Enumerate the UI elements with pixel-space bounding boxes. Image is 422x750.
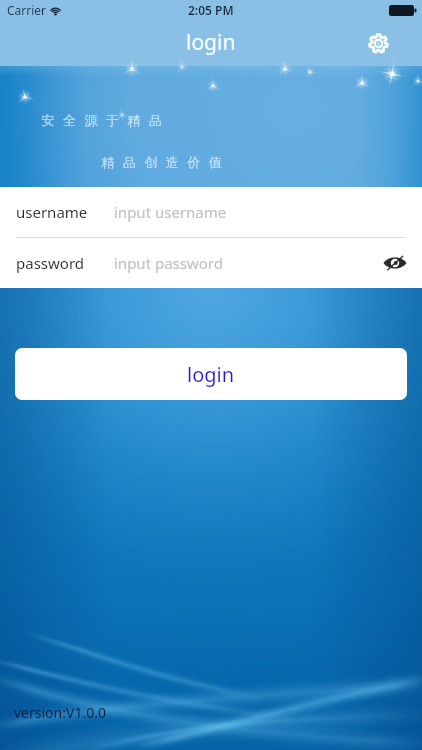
staticText: login xyxy=(186,28,236,57)
staticText: 2:05 PM xyxy=(188,2,234,18)
staticText: Carrier xyxy=(7,2,47,18)
staticText: version:V1.0.0 xyxy=(14,703,106,722)
button[interactable]: Settings xyxy=(360,25,396,61)
button[interactable]: login xyxy=(15,348,407,400)
staticText: input password xyxy=(114,253,223,273)
staticText: 安全源于精品 xyxy=(37,112,166,128)
button[interactable]: username xyxy=(0,187,422,237)
button[interactable]: password xyxy=(0,238,422,288)
staticText: username xyxy=(16,202,114,222)
staticText: 精品创造价值 xyxy=(97,154,226,170)
staticText: login xyxy=(187,361,235,388)
staticText: password xyxy=(16,253,114,273)
staticText: input username xyxy=(114,202,227,222)
button[interactable]: Show password xyxy=(378,246,412,280)
